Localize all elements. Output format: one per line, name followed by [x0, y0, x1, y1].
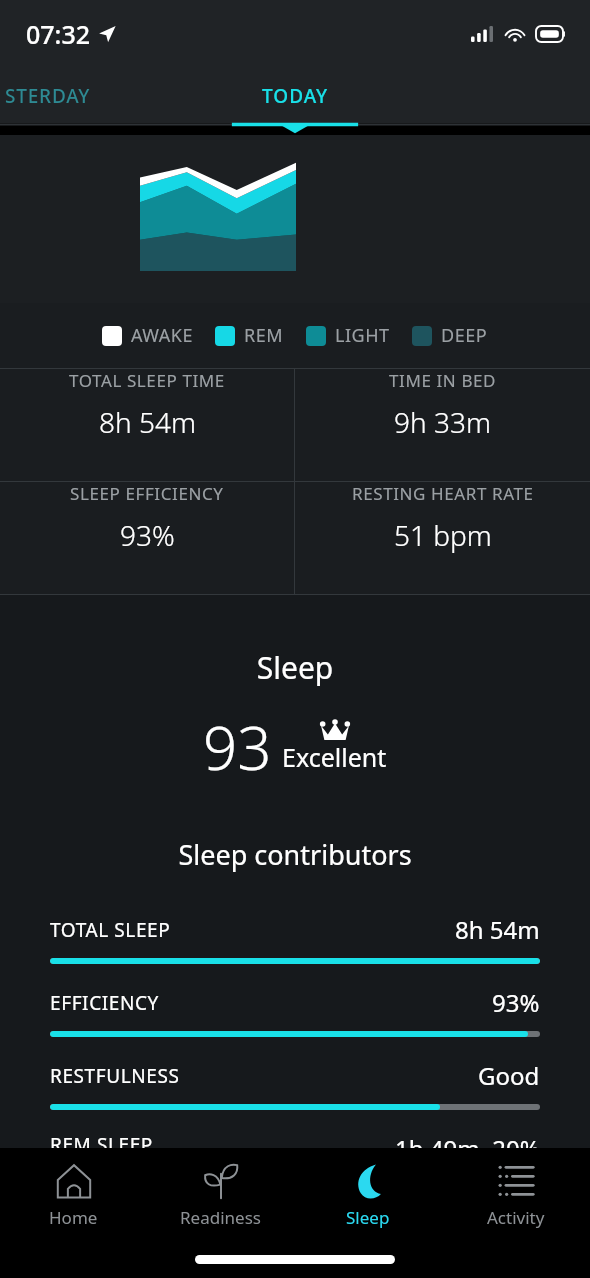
staticText: Sleep contributors	[0, 836, 590, 873]
staticText: TIME IN BED	[389, 369, 497, 392]
staticText: Sleep	[0, 647, 590, 688]
staticText: Excellent	[282, 740, 387, 774]
staticText: 8h 54m	[455, 913, 540, 946]
staticText: 8h 54m	[99, 403, 196, 441]
button[interactable]: RESTING HEART RATE	[295, 482, 590, 554]
button[interactable]: TODAY	[185, 68, 405, 123]
button[interactable]: TOTAL SLEEP TIME	[0, 369, 294, 441]
staticText: 9h 33m	[394, 403, 491, 441]
staticText: 1h 49m. 20%	[395, 1132, 540, 1148]
staticText: Sleep	[346, 1206, 390, 1229]
button[interactable]: TIME IN BED	[295, 369, 590, 441]
staticText: 51 bpm	[394, 516, 492, 554]
other: Readiness	[203, 1163, 239, 1199]
button[interactable]: SLEEP EFFICIENCY	[0, 482, 294, 554]
staticText: REM SLEEP	[50, 1132, 153, 1148]
button[interactable]: STERDAY	[0, 68, 200, 123]
button[interactable]: Sleep	[294, 1148, 442, 1244]
staticText: LIGHT	[335, 323, 390, 348]
button[interactable]: Activity	[442, 1148, 590, 1244]
staticText: Good	[478, 1059, 540, 1092]
button[interactable]: Home	[0, 1148, 147, 1244]
staticText: 93%	[492, 986, 540, 1019]
button[interactable]: TOTAL SLEEP	[0, 913, 590, 964]
staticText: Activity	[487, 1206, 545, 1229]
staticText: Readiness	[180, 1206, 261, 1229]
staticText: RESTING HEART RATE	[352, 482, 534, 505]
staticText: 07:32	[26, 17, 91, 51]
other: Sleep	[350, 1163, 386, 1199]
other: Home	[56, 1163, 92, 1199]
button[interactable]: Readiness	[147, 1148, 294, 1244]
staticText: REM	[244, 323, 284, 348]
other: Activity	[498, 1163, 534, 1199]
staticText: DEEP	[441, 323, 488, 348]
staticText: AWAKE	[131, 323, 193, 348]
staticText: Home	[49, 1206, 98, 1229]
staticText: STERDAY	[5, 83, 91, 109]
staticText: RESTFULNESS	[50, 1063, 180, 1089]
staticText: EFFICIENCY	[50, 990, 159, 1016]
staticText: TOTAL SLEEP TIME	[69, 369, 225, 392]
staticText: TOTAL SLEEP	[50, 917, 171, 943]
button[interactable]: REM SLEEP	[0, 1132, 590, 1148]
staticText: TODAY	[262, 83, 329, 109]
staticText: SLEEP EFFICIENCY	[70, 482, 224, 505]
button[interactable]: RESTFULNESS	[0, 1059, 590, 1110]
button[interactable]: EFFICIENCY	[0, 986, 590, 1037]
staticText: 93%	[120, 516, 175, 554]
staticText: 93	[203, 706, 272, 788]
